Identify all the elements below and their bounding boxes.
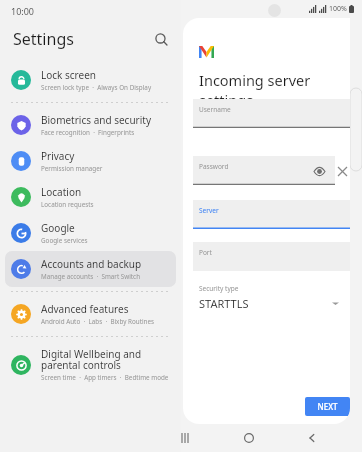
staticText: 10:00 [11, 5, 35, 17]
staticText: Biometrics and security [41, 113, 151, 127]
staticText: Permission manager [41, 164, 103, 173]
staticText: Google services [41, 236, 88, 245]
staticText: Digital Wellbeing and parental controls [41, 347, 170, 372]
staticText: Location requests [41, 200, 94, 209]
button[interactable]: Port [193, 242, 350, 271]
button[interactable]: Search [149, 27, 173, 51]
staticText: Port [199, 248, 212, 257]
button[interactable]: Google [5, 215, 176, 251]
staticText: Username [199, 105, 231, 114]
staticText: Privacy [41, 149, 75, 163]
button[interactable]: Lock screen [5, 62, 176, 98]
button[interactable]: Privacy [5, 143, 176, 179]
staticText: Incoming server settings [199, 70, 350, 110]
button[interactable]: Location [5, 179, 176, 215]
button[interactable]: Biometrics and security [5, 107, 176, 143]
staticText: STARTTLS [199, 296, 249, 311]
staticText: Location [41, 185, 82, 199]
staticText: Password [199, 162, 229, 171]
button[interactable]: Recents [171, 424, 199, 452]
staticText: Server [199, 206, 219, 215]
button[interactable]: Home [235, 424, 263, 452]
staticText: Google [41, 221, 75, 235]
staticText: Face recognition · Fingerprints [41, 128, 135, 137]
staticText: Android Auto · Labs · Bixby Routines [41, 317, 155, 326]
staticText: Settings [13, 28, 74, 50]
button[interactable]: STARTTLS [199, 296, 339, 311]
button[interactable]: Advanced features [5, 296, 176, 332]
staticText: Security type [199, 284, 239, 293]
button[interactable]: NEXT [305, 397, 350, 416]
staticText: Lock screen [41, 68, 97, 82]
button[interactable]: Show password [311, 163, 327, 179]
staticText: Accounts and backup [41, 257, 142, 271]
button[interactable]: Clear [335, 162, 350, 180]
button[interactable]: Username [193, 99, 350, 128]
button[interactable]: Accounts and backup [5, 251, 176, 287]
button[interactable]: Server [193, 200, 350, 229]
staticText: Advanced features [41, 302, 129, 316]
staticText: NEXT [317, 401, 338, 412]
button[interactable]: Back [298, 424, 326, 452]
button[interactable]: Digital Wellbeing and parental controls [5, 341, 176, 388]
staticText: 100% [329, 4, 347, 14]
staticText: Screen lock type · Always On Display [41, 83, 152, 92]
button[interactable]: Password [193, 156, 335, 185]
staticText: Screen time · App timers · Bedtime mode [41, 373, 169, 382]
staticText: Manage accounts · Smart Switch [41, 272, 141, 281]
